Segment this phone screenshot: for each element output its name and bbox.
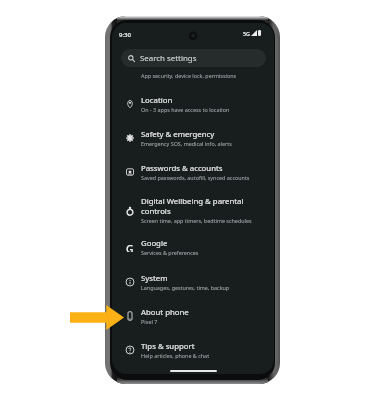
staticText: On - 3 apps have access to location: [141, 106, 230, 113]
button[interactable]: G: [112, 238, 274, 263]
button[interactable]: System: [112, 273, 274, 298]
button[interactable]: Security & privacy: [112, 61, 274, 86]
staticText: Security & privacy: [141, 61, 271, 72]
staticText: Search settings: [140, 53, 197, 64]
button[interactable]: Passwords & accounts: [112, 163, 274, 188]
staticText: App security, device lock, permissions: [141, 72, 237, 79]
staticText: Digital Wellbeing & parental controls: [141, 196, 245, 216]
staticText: About phone: [141, 307, 271, 318]
staticText: Pixel 7: [141, 318, 158, 325]
staticText: Services & preferences: [141, 249, 199, 256]
staticText: Help articles, phone & chat: [141, 352, 210, 359]
staticText: Languages, gestures, time, backup: [141, 284, 230, 291]
staticText: Saved passwords, autofill, synced accoun…: [141, 174, 250, 181]
button[interactable]: About phone: [112, 307, 274, 332]
staticText: Tips & support: [141, 341, 271, 352]
staticText: G: [126, 242, 134, 252]
staticText: Emergency SOS, medical info, alerts: [141, 140, 232, 147]
other: Arrow pointing to About phone: [70, 305, 124, 330]
staticText: 5G: [243, 30, 251, 37]
button[interactable]: Safety & emergency: [112, 129, 274, 154]
button[interactable]: Digital Wellbeing & parental controls: [112, 196, 274, 231]
staticText: Screen time, app timers, bedtime schedul…: [141, 217, 252, 224]
staticText: Safety & emergency: [141, 129, 271, 140]
button[interactable]: Location: [112, 95, 274, 120]
button[interactable]: Tips & support: [112, 341, 274, 366]
staticText: Location: [141, 95, 271, 106]
staticText: Passwords & accounts: [141, 163, 271, 174]
staticText: Google: [141, 238, 271, 249]
staticText: System: [141, 273, 271, 284]
button[interactable]: Search settings: [121, 49, 266, 67]
staticText: 9:30: [119, 31, 131, 39]
